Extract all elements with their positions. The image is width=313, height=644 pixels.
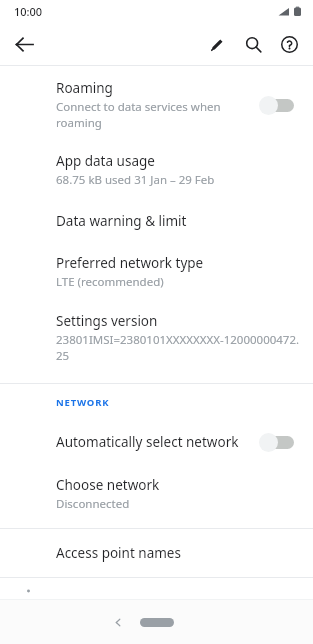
button[interactable]: App data usage — [0, 141, 313, 199]
staticText: Access point names — [56, 544, 181, 562]
button[interactable]: Access point names — [0, 529, 313, 577]
staticText: Settings version — [56, 312, 158, 330]
button[interactable]: Data warning & limit — [0, 199, 313, 243]
staticText: Automatically select network — [56, 433, 239, 451]
staticText: Roaming — [56, 79, 113, 97]
staticText: App data usage — [56, 152, 155, 170]
button[interactable]: Help — [271, 26, 307, 62]
staticText: 23801IMSI=2380101XXXXXXXX-12000000472. 2… — [56, 332, 300, 363]
staticText: 10:00 — [14, 4, 43, 19]
button[interactable]: Back — [6, 26, 42, 62]
staticText: 68.75 kB used 31 Jan – 29 Feb — [56, 172, 215, 188]
staticText: Connect to data services when roaming — [56, 99, 221, 130]
button[interactable]: Automatically select network — [0, 419, 313, 465]
button[interactable]: Back — [101, 605, 135, 639]
staticText: LTE (recommended) — [56, 274, 164, 290]
staticText: Choose network — [56, 476, 160, 494]
button[interactable]: Preferred network type — [0, 243, 313, 301]
button[interactable]: Choose network — [0, 465, 313, 525]
staticText: Data warning & limit — [56, 212, 187, 230]
button[interactable]: Toggle — [259, 92, 301, 118]
button[interactable]: Toggle — [259, 429, 301, 455]
button[interactable]: Roaming — [0, 66, 313, 141]
staticText: Preferred network type — [56, 254, 204, 272]
button[interactable]: Settings version — [0, 301, 313, 376]
button[interactable]: Search — [235, 26, 271, 62]
button[interactable]: Home — [140, 618, 174, 627]
staticText: NETWORK — [56, 396, 110, 409]
button[interactable]: Edit — [199, 26, 235, 62]
staticText: Disconnected — [56, 496, 130, 512]
